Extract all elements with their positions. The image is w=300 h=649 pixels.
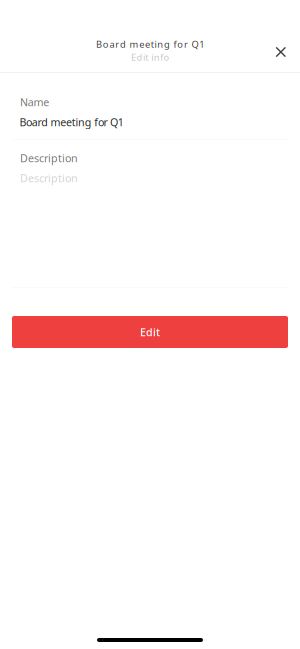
staticText: Description xyxy=(20,151,78,165)
staticText: Description xyxy=(20,171,78,185)
button[interactable]: Edit xyxy=(12,316,288,348)
button[interactable]: Close xyxy=(265,36,297,68)
staticText: Board meeting for Q1 xyxy=(96,38,204,50)
staticText: Board meeting for Q1 xyxy=(19,115,124,129)
staticText: Edit xyxy=(140,325,160,339)
staticText: Edit info xyxy=(131,51,170,63)
staticText: Name xyxy=(20,95,49,109)
